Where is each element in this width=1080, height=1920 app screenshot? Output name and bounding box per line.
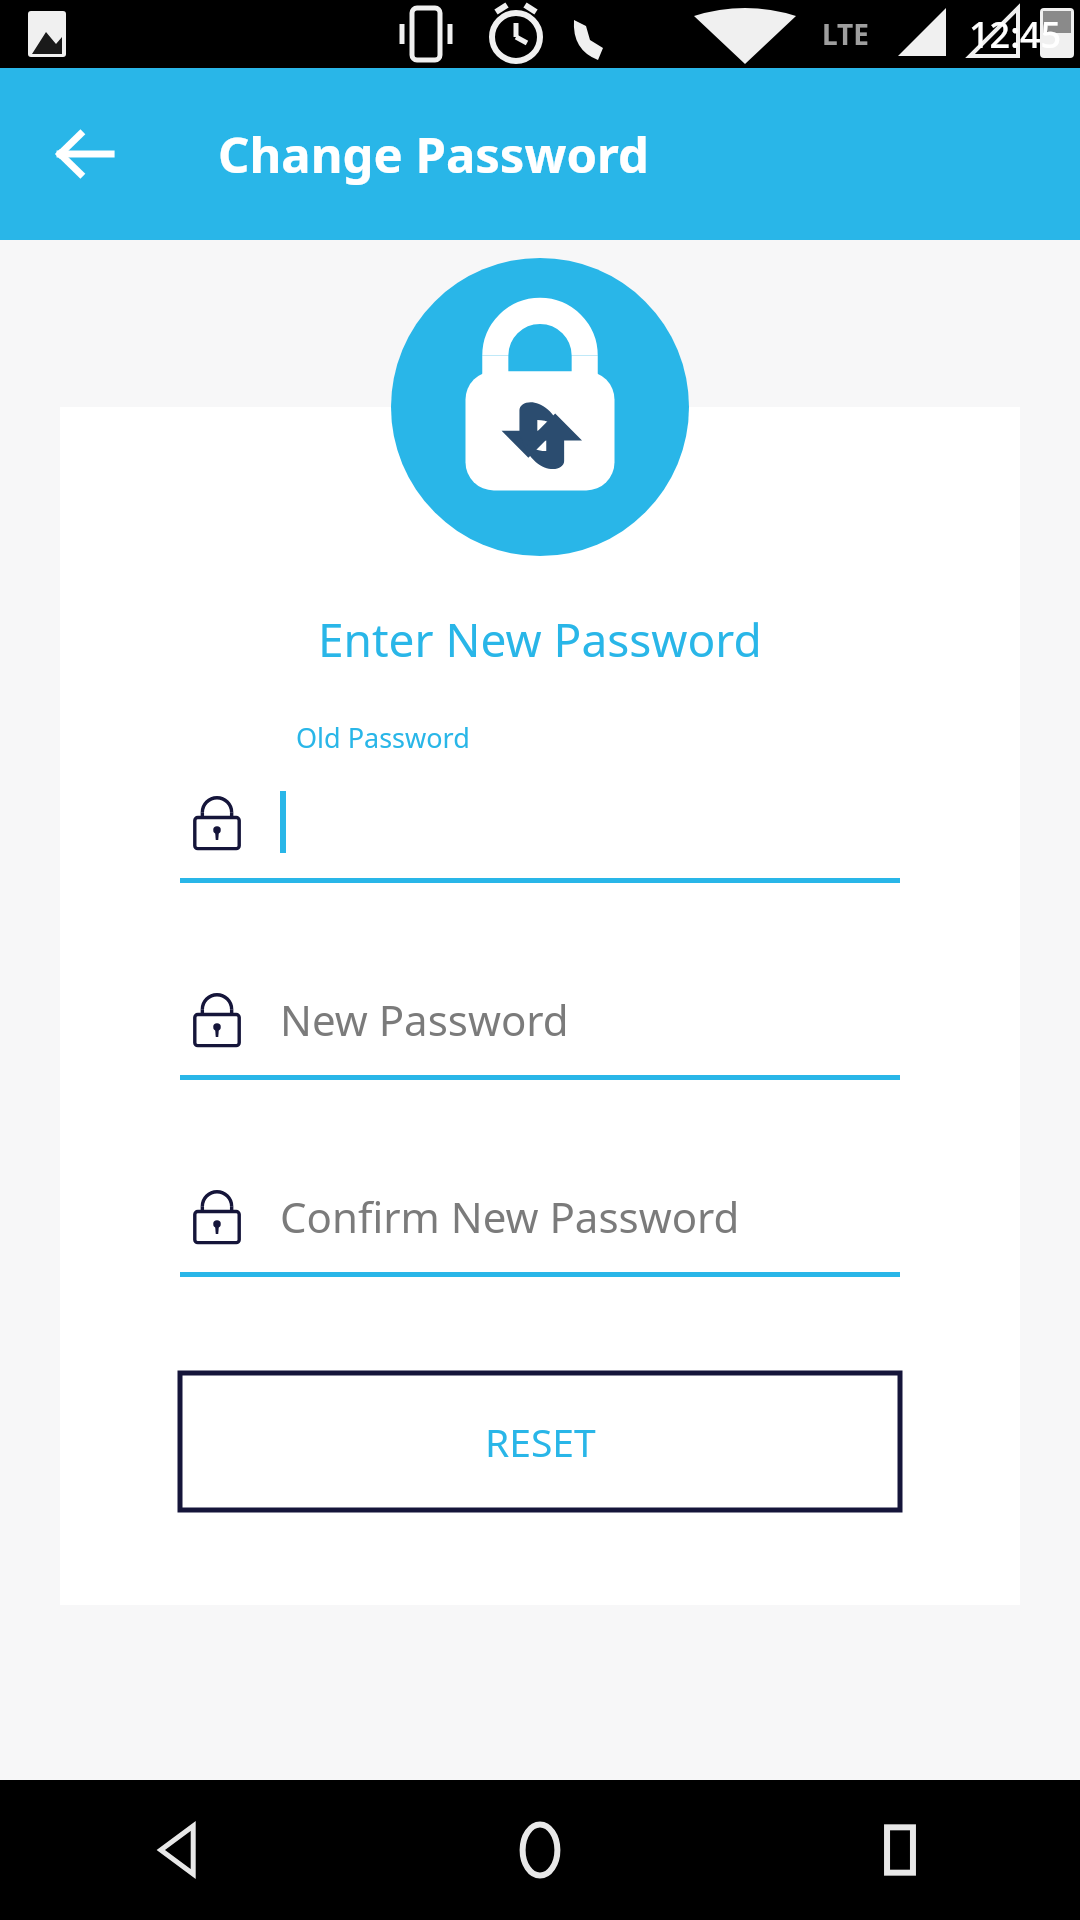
staticText: Enter New Password: [318, 608, 762, 671]
staticText: Confirm New Password: [280, 1188, 740, 1245]
button[interactable]: RESET: [180, 1373, 900, 1510]
button[interactable]: Back: [30, 99, 140, 209]
button[interactable]: New Password: [180, 963, 900, 1075]
staticText: LTE: [822, 15, 869, 53]
staticText: New Password: [280, 991, 569, 1048]
button[interactable]: Back: [0, 1780, 360, 1920]
staticText: Change Password: [218, 121, 649, 188]
button[interactable]: Home: [360, 1780, 720, 1920]
button[interactable]: Recent apps: [720, 1780, 1080, 1920]
button[interactable]: Confirm New Password: [180, 1160, 900, 1272]
staticText: Old Password: [296, 719, 470, 756]
button[interactable]: [180, 766, 900, 878]
staticText: RESET: [485, 1415, 596, 1468]
staticText: 12:45: [969, 10, 1062, 59]
